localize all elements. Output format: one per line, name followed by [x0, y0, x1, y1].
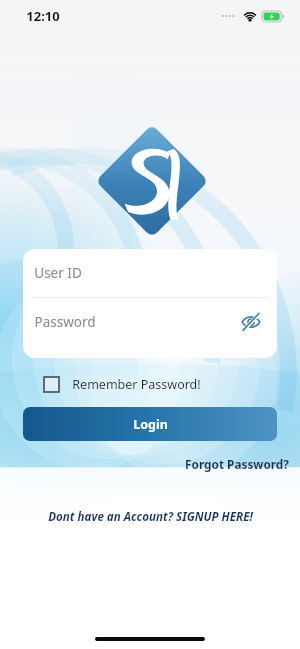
staticText: Password	[34, 313, 96, 331]
button[interactable]: User ID	[23, 249, 277, 297]
staticText: Remember Password!	[72, 376, 201, 393]
staticText: Dont have an Account? SIGNUP HERE!	[48, 509, 253, 525]
button[interactable]: Remember Password!	[44, 373, 201, 395]
staticText: Forgot Password?	[185, 456, 289, 472]
button[interactable]: Show password	[239, 310, 263, 334]
button[interactable]: Forgot Password?	[185, 456, 289, 472]
staticText: User ID	[34, 264, 82, 282]
button[interactable]: Password	[23, 298, 277, 346]
staticText: 12:10	[26, 7, 60, 25]
button[interactable]: Login	[23, 407, 277, 441]
staticText: Login	[133, 416, 168, 433]
button[interactable]: Dont have an Account? SIGNUP HERE!	[48, 509, 253, 525]
